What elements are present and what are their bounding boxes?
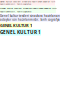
staticText: Genel kultur testleri sinavlara hazirlan… xyxy=(0,14,60,22)
staticText: Genel kultur testleri sinavlara hazirlan… xyxy=(0,6,56,13)
staticText: GENEL KULTUR 1 xyxy=(0,29,41,35)
staticText: Genel kultur testleri sinavlara hazirlan… xyxy=(0,0,55,5)
staticText: GENEL KULTUR 1 xyxy=(0,23,32,28)
